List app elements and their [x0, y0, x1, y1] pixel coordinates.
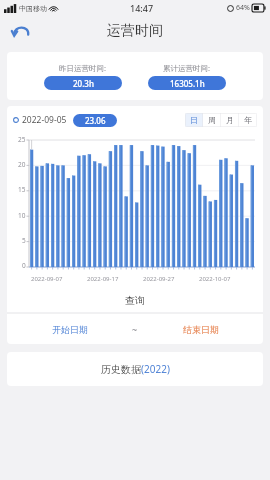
- staticText: 历史数据(2022): [101, 362, 170, 376]
- button[interactable]: 昨日运营时间:: [44, 63, 122, 90]
- button[interactable]: 结束日期: [138, 314, 263, 344]
- staticText: 运营时间: [107, 22, 163, 40]
- staticText: 20: [18, 160, 26, 169]
- staticText: 23.06: [85, 115, 106, 126]
- staticText: 开始日期: [52, 324, 88, 335]
- button[interactable]: 周: [203, 113, 221, 127]
- staticText: 查询: [125, 294, 145, 307]
- staticText: 64%: [236, 3, 250, 13]
- button[interactable]: 历史数据(2022): [7, 352, 263, 386]
- staticText: 14:47: [130, 2, 154, 14]
- staticText: 年: [244, 115, 252, 125]
- button[interactable]: 累计运营时间:: [148, 63, 226, 90]
- staticText: 2022-09-27: [143, 275, 175, 283]
- staticText: 累计运营时间:: [163, 63, 211, 73]
- staticText: 0: [22, 261, 26, 270]
- staticText: ~: [132, 323, 138, 335]
- staticText: 2022-09-17: [87, 275, 119, 283]
- button[interactable]: 年: [239, 113, 257, 127]
- staticText: 中国移动: [19, 4, 47, 13]
- button[interactable]: Back: [8, 18, 34, 44]
- staticText: 20.3h: [73, 78, 94, 89]
- staticText: 2022-09-07: [31, 275, 63, 283]
- staticText: 16305.1h: [170, 78, 205, 89]
- staticText: 月: [226, 115, 234, 125]
- staticText: 2022-09-05: [22, 114, 67, 126]
- staticText: 结束日期: [183, 324, 219, 335]
- staticText: 25: [18, 135, 26, 144]
- staticText: 10: [18, 211, 26, 220]
- button[interactable]: 日: [185, 113, 203, 127]
- staticText: 周: [208, 115, 216, 125]
- staticText: 2022-10-07: [199, 275, 231, 283]
- button[interactable]: 开始日期: [7, 314, 132, 344]
- staticText: 日: [190, 115, 198, 125]
- button[interactable]: 月: [221, 113, 239, 127]
- staticText: 5: [22, 236, 26, 245]
- staticText: 昨日运营时间:: [59, 63, 107, 73]
- staticText: 15: [18, 185, 26, 194]
- button[interactable]: 查询: [7, 287, 263, 313]
